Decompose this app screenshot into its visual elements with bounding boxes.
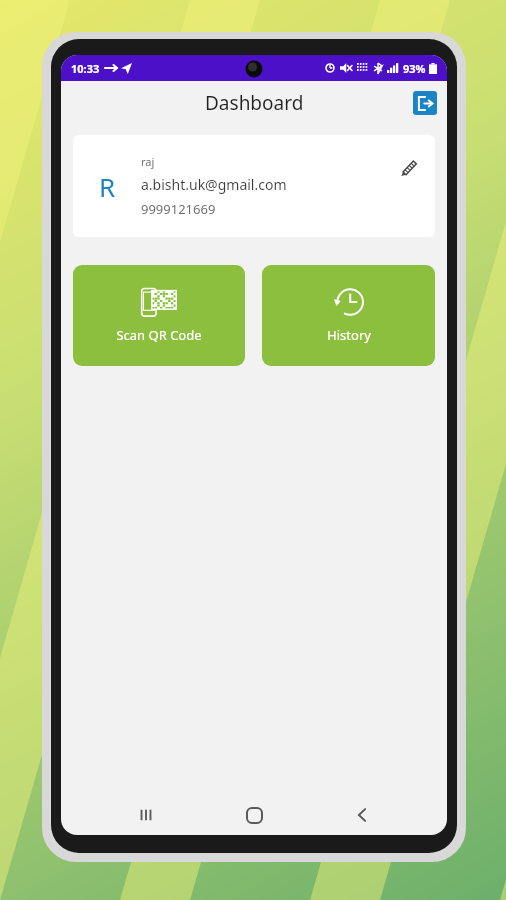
staticText: 10:33 [71,61,100,76]
staticText: Scan QR Code [116,326,202,344]
button[interactable]: R [73,135,435,237]
button[interactable]: Home [231,795,277,835]
staticText: R [99,169,116,204]
button[interactable]: Edit profile [397,155,421,179]
staticText: 9999121669 [141,200,216,218]
staticText: History [327,326,371,344]
button[interactable]: Recent apps [123,795,169,835]
staticText: raj [141,154,155,169]
staticText: a.bisht.uk@gmail.com [141,175,287,194]
staticText: 93% [403,61,426,76]
button[interactable]: History [262,265,435,366]
button[interactable]: Scan QR Code [73,265,245,366]
button[interactable]: Back [339,795,385,835]
staticText: Dashboard [205,90,304,116]
button[interactable]: Logout [413,91,437,115]
